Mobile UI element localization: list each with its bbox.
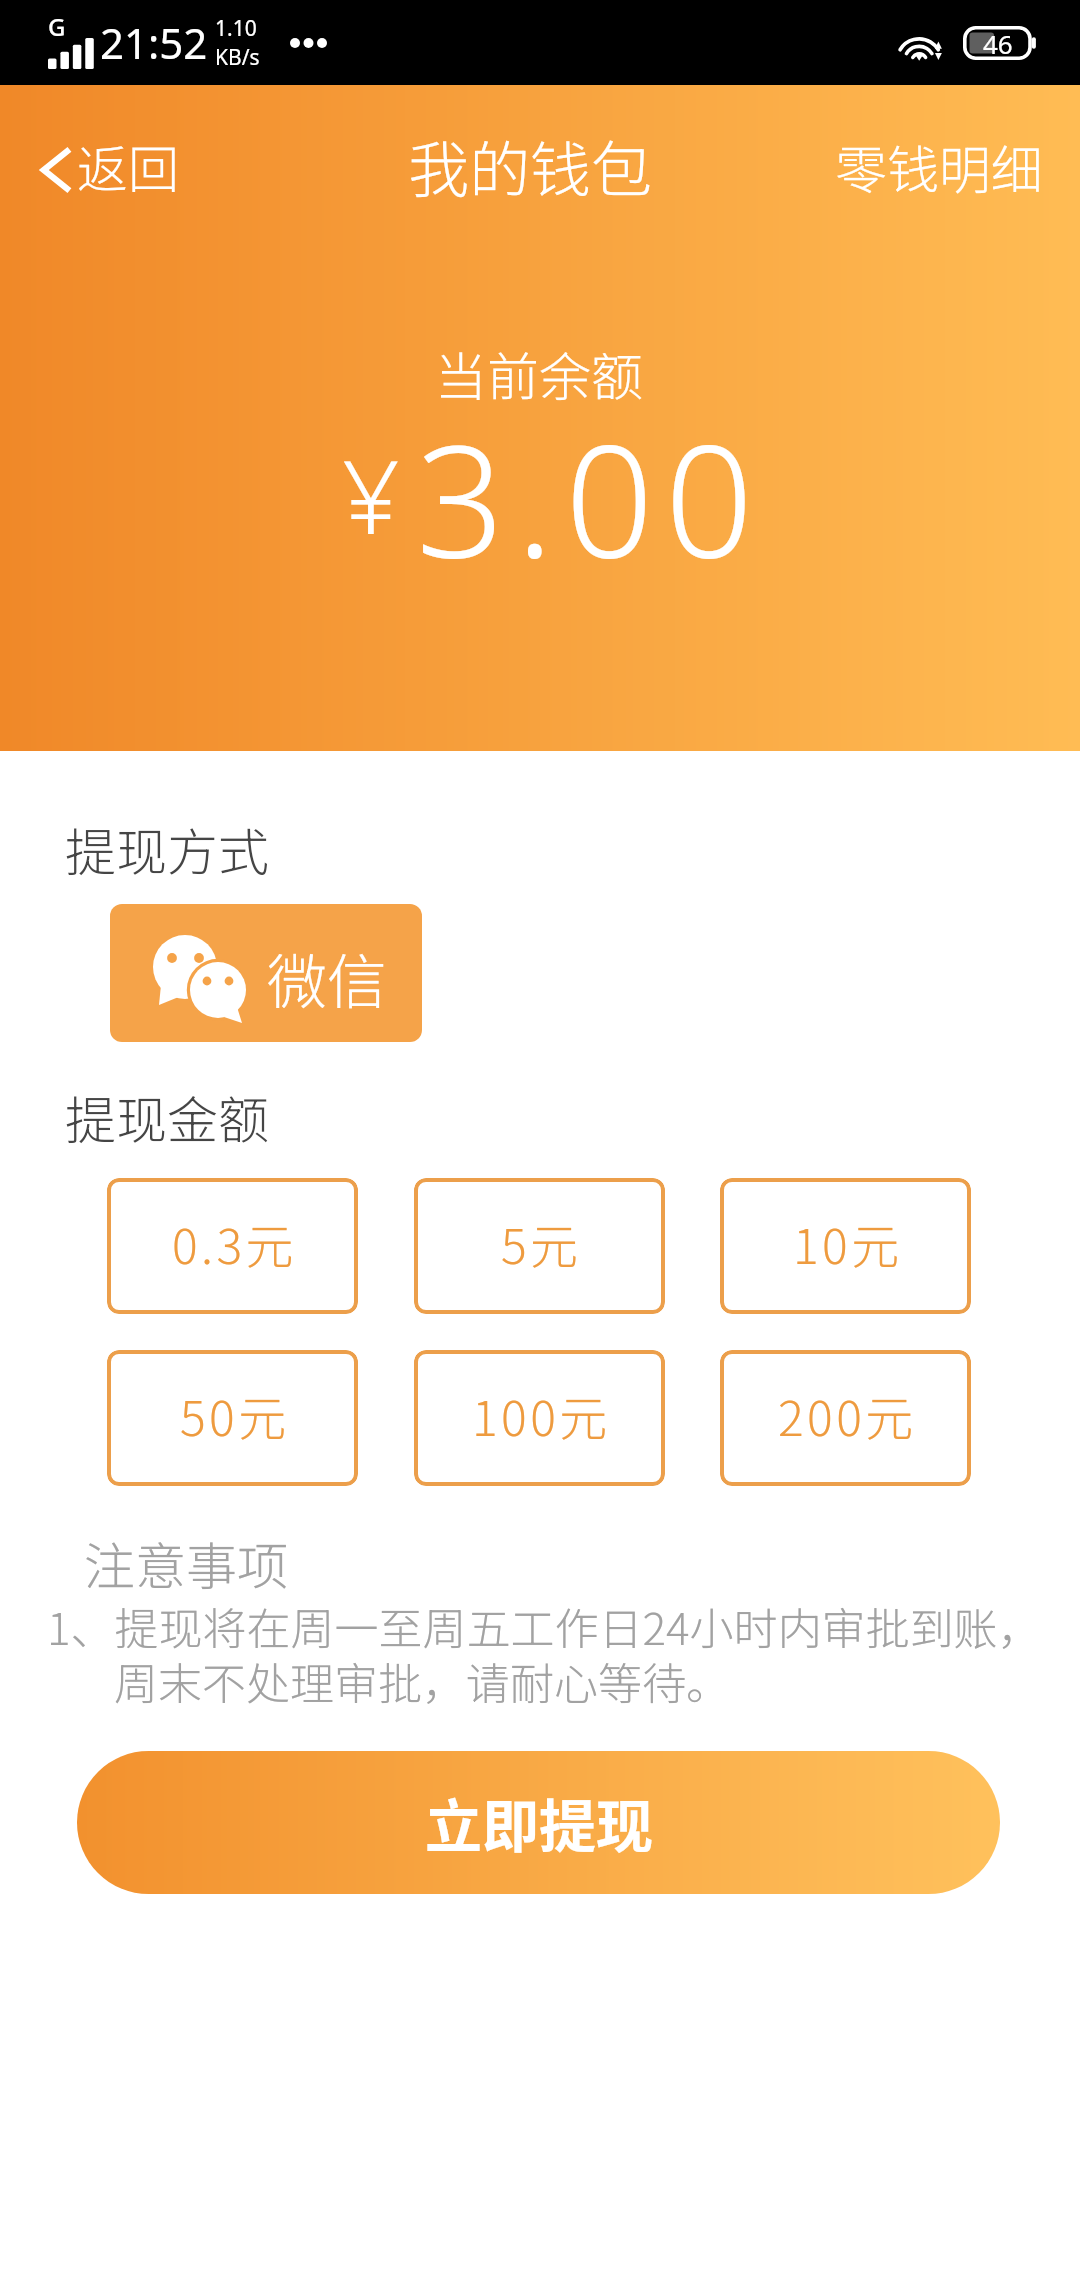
staticText: 1.10: [215, 14, 257, 43]
staticText: 10元: [793, 1208, 903, 1278]
button[interactable]: 零钱明细: [805, 124, 1080, 214]
button[interactable]: 100元: [414, 1350, 665, 1486]
button[interactable]: 10元: [720, 1178, 971, 1314]
staticText: 我的钱包: [408, 121, 653, 209]
staticText: 100元: [472, 1380, 611, 1450]
button[interactable]: 0.3元: [107, 1178, 358, 1314]
staticText: G: [48, 10, 66, 43]
staticText: 微信: [267, 934, 387, 1021]
other: Cellular signal: [48, 38, 94, 69]
staticText: 注意事项: [84, 1526, 289, 1600]
staticText: 当前余额: [435, 336, 644, 411]
button[interactable]: WeChat: [110, 904, 422, 1042]
staticText: 200元: [778, 1380, 917, 1450]
other: Battery 46 percent: [963, 26, 1037, 60]
button[interactable]: 立即提现: [77, 1751, 1000, 1894]
staticText: 提现金额: [65, 1080, 270, 1154]
staticText: 50元: [180, 1380, 290, 1450]
button[interactable]: 50元: [107, 1350, 358, 1486]
staticText: 立即提现: [425, 1781, 653, 1864]
staticText: 返回: [77, 129, 180, 203]
button[interactable]: Back: [20, 127, 207, 217]
staticText: 5元: [501, 1208, 582, 1278]
other: Wi-Fi connected: [900, 24, 948, 62]
staticText: 提现方式: [65, 812, 270, 886]
button[interactable]: 5元: [414, 1178, 665, 1314]
staticText: ¥: [342, 426, 400, 564]
staticText: 周末不处理审批，请耐心等待。: [114, 1649, 730, 1713]
staticText: 46: [983, 26, 1013, 60]
button[interactable]: 200元: [720, 1350, 971, 1486]
staticText: 3.00: [416, 391, 765, 602]
staticText: 1、提现将在周一至周五工作日24小时内审批到账，: [47, 1594, 1042, 1658]
other: More status icons: [290, 34, 327, 52]
staticText: 21:52: [100, 14, 208, 71]
other: WeChat: [141, 926, 281, 1026]
staticText: 0.3元: [172, 1208, 297, 1278]
staticText: KB/s: [215, 43, 260, 72]
